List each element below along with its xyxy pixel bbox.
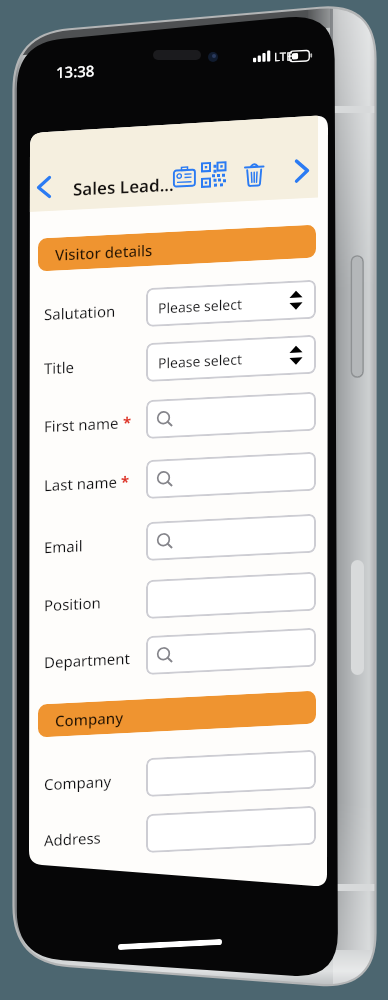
staticText: Please select [158,305,242,324]
button[interactable] [146,820,316,859]
button[interactable] [146,406,316,445]
staticText: * [119,417,132,437]
staticText: 13:38 [56,65,95,85]
button[interactable] [244,174,265,199]
button[interactable] [146,528,316,567]
button[interactable] [146,466,316,505]
staticText: Sales Lead... [73,180,174,203]
staticText: Please select [158,360,242,379]
button[interactable] [146,642,316,681]
staticText: Position [44,596,101,616]
staticText: Company [44,775,112,795]
staticText: Title [44,359,74,379]
staticText: Salutation [44,305,116,325]
button[interactable]: Please select [146,294,316,333]
button[interactable] [146,586,316,625]
staticText: Address [44,831,101,851]
staticText: Visitor details [55,246,153,266]
button[interactable]: Please select [146,349,316,388]
staticText: * [117,476,130,496]
button[interactable] [295,173,309,196]
button[interactable] [146,764,316,803]
staticText: Department [44,653,130,673]
staticText: First name [44,417,119,437]
staticText: Email [44,538,83,558]
staticText: Company [55,712,124,732]
button[interactable] [37,177,51,199]
staticText: Last name [44,476,117,496]
button[interactable] [173,174,196,195]
button[interactable] [201,171,228,197]
